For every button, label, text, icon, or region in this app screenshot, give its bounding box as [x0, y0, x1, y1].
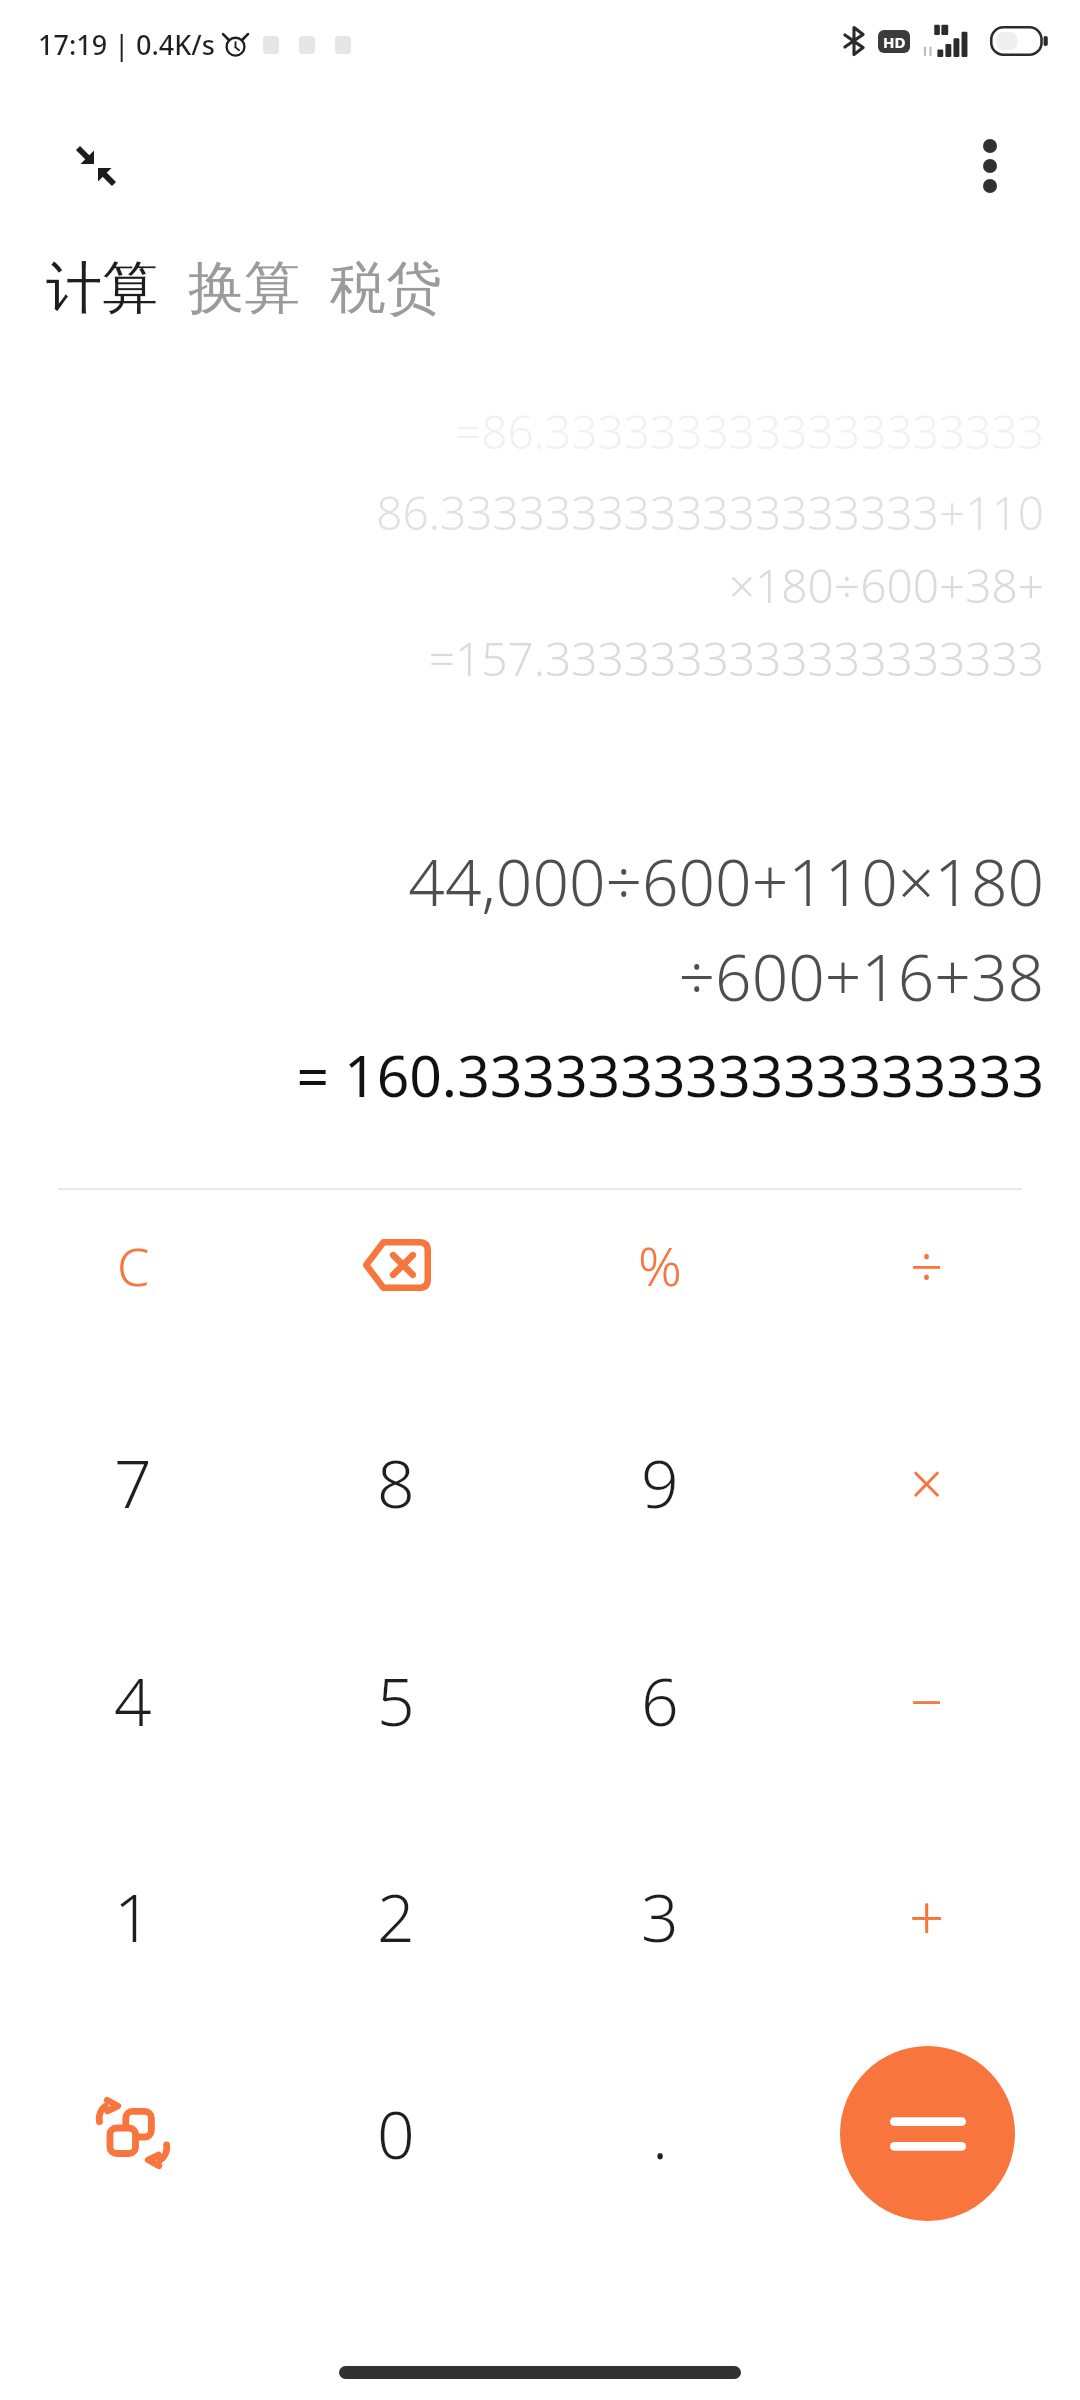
- button[interactable]: 4: [18, 1600, 248, 1800]
- button[interactable]: ×: [812, 1382, 1042, 1582]
- staticText: = 160.333333333333333333: [296, 1036, 1044, 1114]
- button[interactable]: C: [18, 1165, 248, 1365]
- staticText: 86.3333333333333333333+110: [376, 481, 1044, 544]
- staticText: 6: [641, 1655, 679, 1745]
- button[interactable]: −: [812, 1600, 1042, 1800]
- staticText: 8: [377, 1437, 415, 1527]
- button[interactable]: 3: [545, 1816, 775, 2016]
- staticText: 0: [377, 2088, 415, 2178]
- button[interactable]: 换算: [186, 245, 302, 332]
- staticText: 9: [641, 1437, 679, 1527]
- staticText: .: [652, 2088, 669, 2178]
- button[interactable]: More options: [944, 120, 1036, 212]
- staticText: 1: [114, 1871, 152, 1961]
- staticText: ÷: [910, 1226, 944, 1305]
- button[interactable]: 0: [281, 2033, 511, 2233]
- button[interactable]: 7: [18, 1382, 248, 1582]
- staticText: 7: [114, 1437, 152, 1527]
- staticText: ÷600+16+38: [678, 933, 1044, 1020]
- staticText: ×: [910, 1443, 944, 1522]
- button[interactable]: 计算: [44, 245, 160, 332]
- staticText: 税贷: [330, 253, 442, 324]
- button[interactable]: Unit converter: [18, 2033, 248, 2233]
- staticText: 4: [114, 1655, 152, 1745]
- button[interactable]: 8: [281, 1382, 511, 1582]
- button[interactable]: %: [545, 1165, 775, 1365]
- staticText: +: [909, 1874, 945, 1958]
- button[interactable]: 6: [545, 1600, 775, 1800]
- staticText: 2: [377, 1871, 415, 1961]
- staticText: =157.3333333333333333333: [428, 627, 1044, 690]
- staticText: 17:19 | 0.4K/s: [38, 26, 215, 63]
- staticText: HD: [883, 32, 906, 52]
- button[interactable]: Backspace: [281, 1165, 511, 1365]
- staticText: 计算: [46, 253, 158, 324]
- staticText: 换算: [188, 253, 300, 324]
- button[interactable]: +: [812, 1816, 1042, 2016]
- button[interactable]: Collapse: [50, 120, 142, 212]
- button[interactable]: .: [545, 2033, 775, 2233]
- button[interactable]: 1: [18, 1816, 248, 2016]
- staticText: 44,000÷600+110×180: [408, 838, 1044, 925]
- staticText: 3: [641, 1871, 679, 1961]
- staticText: ×180÷600+38+: [728, 554, 1044, 617]
- button[interactable]: 2: [281, 1816, 511, 2016]
- staticText: =86.3333333333333333333: [454, 400, 1044, 463]
- staticText: %: [638, 1228, 682, 1302]
- button[interactable]: Equals: [840, 2046, 1015, 2221]
- button[interactable]: 9: [545, 1382, 775, 1582]
- staticText: C: [117, 1230, 150, 1301]
- button[interactable]: 5: [281, 1600, 511, 1800]
- button[interactable]: 税贷: [328, 245, 444, 332]
- staticText: −: [910, 1661, 944, 1740]
- staticText: 5: [377, 1655, 415, 1745]
- button[interactable]: ÷: [812, 1165, 1042, 1365]
